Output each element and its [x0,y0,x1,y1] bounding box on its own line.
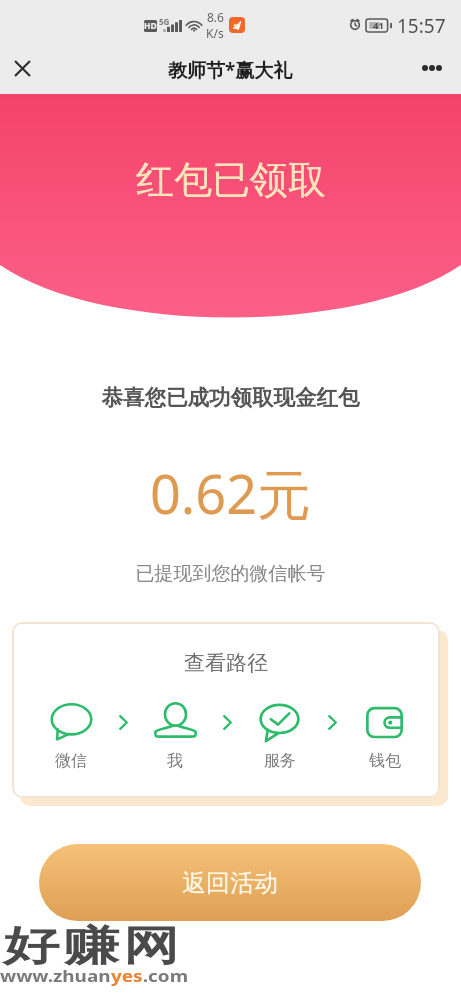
staticText: 返回活动 [182,868,278,898]
staticText: 教师节*赢大礼 [168,57,293,83]
staticText: 我 [167,751,183,771]
staticText: 微信 [55,751,87,771]
button[interactable]: Close [0,48,44,92]
button[interactable]: More options [409,48,453,92]
staticText: 15:57 [397,13,446,39]
staticText: 好赚网 [0,923,181,975]
button[interactable]: 我 [128,703,222,771]
staticText: 红包已领取 [136,156,326,204]
staticText: 0.62元 [0,456,461,530]
staticText: 恭喜您已成功领取现金红包 [0,384,461,411]
button[interactable]: 钱包 [337,703,432,771]
staticText: 查看路径 [12,650,440,676]
staticText: 好赚网 [3,919,184,971]
staticText: 41 [373,19,384,32]
staticText: 钱包 [369,751,401,771]
staticText: 已提现到您的微信帐号 [0,562,461,586]
staticText: .com [143,965,189,987]
staticText: 好赚网 [0,919,181,971]
staticText: www.zhuan [0,965,111,987]
staticText: 服务 [264,751,296,771]
staticText: HD [144,20,157,32]
staticText: yes [111,965,143,987]
staticText: 好赚网 [6,923,187,975]
button[interactable]: 返回活动 [39,844,421,921]
staticText: 好赚网 [6,921,187,973]
staticText: K/s [206,25,224,41]
staticText: 8.6 [207,9,224,25]
staticText: 好赚网 [6,919,187,971]
button[interactable]: 微信 [24,703,118,771]
staticText: 好赚网 [3,921,184,973]
button[interactable]: 服务 [232,703,327,771]
staticText: 5G [159,16,170,27]
staticText: 好赚网 [3,923,184,975]
staticText: 好赚网 [0,921,181,973]
